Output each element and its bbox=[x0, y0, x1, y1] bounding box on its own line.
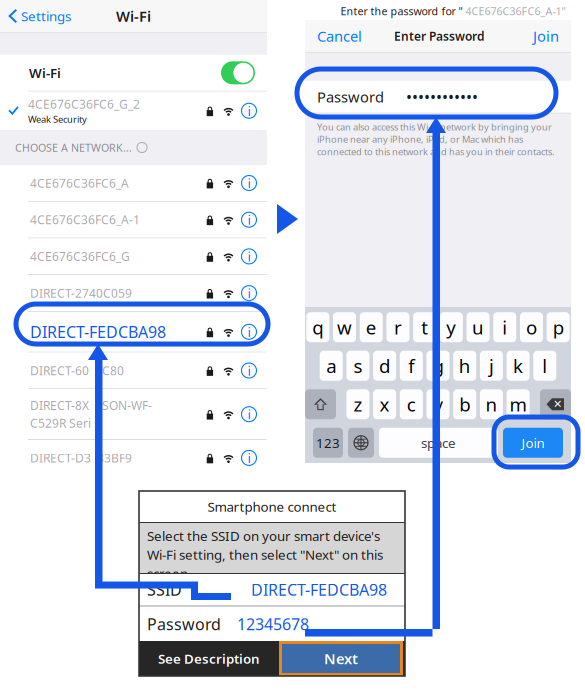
staticText: Weak Security bbox=[28, 113, 87, 125]
staticText: w bbox=[337, 315, 352, 340]
staticText: DIRECT-FEDCBA98 bbox=[251, 579, 387, 600]
staticText: DIRECT-8X PSON-WF- bbox=[30, 397, 152, 413]
staticText: b bbox=[459, 392, 470, 417]
staticText: space bbox=[421, 434, 456, 452]
staticText: i bbox=[247, 449, 250, 467]
button[interactable]: x bbox=[373, 389, 396, 419]
button[interactable]: b bbox=[453, 389, 476, 419]
button[interactable]: Delete bbox=[540, 389, 571, 419]
staticText: DIRECT-D3 33BF9 bbox=[30, 450, 132, 466]
staticText: Next bbox=[324, 649, 358, 668]
button[interactable]: DIRECT-2740C059 bbox=[0, 275, 267, 311]
button[interactable]: o bbox=[520, 312, 543, 342]
staticText: x bbox=[380, 392, 390, 417]
staticText: s bbox=[353, 353, 362, 378]
button[interactable]: u bbox=[467, 312, 490, 342]
staticText: j bbox=[489, 353, 494, 378]
staticText: Enter the password for " bbox=[340, 4, 462, 18]
button[interactable]: DIRECT-60 8C80 bbox=[0, 352, 267, 388]
staticText: i bbox=[247, 247, 250, 265]
staticText: o bbox=[526, 315, 537, 340]
staticText: p bbox=[553, 315, 564, 340]
button[interactable]: e bbox=[360, 312, 383, 342]
staticText: CHOOSE A NETWORK... bbox=[15, 140, 132, 155]
button[interactable]: Join bbox=[503, 428, 563, 458]
button[interactable]: Cancel bbox=[305, 20, 362, 52]
button[interactable]: d bbox=[373, 351, 396, 381]
button[interactable]: 4CE676C36FC6_G bbox=[0, 238, 267, 274]
button[interactable]: 4CE676C36FC6_A-1 bbox=[0, 202, 267, 238]
staticText: r bbox=[394, 315, 402, 340]
staticText: 4CE676C36FC6_A-1" bbox=[465, 4, 565, 18]
button[interactable]: h bbox=[453, 351, 476, 381]
button[interactable]: 123 bbox=[313, 428, 343, 458]
staticText: Wi-Fi bbox=[29, 64, 61, 82]
button[interactable]: p bbox=[547, 312, 570, 342]
button[interactable]: See Description bbox=[139, 641, 279, 676]
staticText: q bbox=[312, 315, 323, 340]
staticText: DIRECT-60 8C80 bbox=[30, 362, 124, 378]
staticText: i bbox=[247, 323, 250, 341]
button[interactable]: Next keyboard bbox=[348, 428, 374, 458]
staticText: i bbox=[247, 284, 250, 302]
button[interactable]: s bbox=[346, 351, 369, 381]
staticText: i bbox=[247, 102, 250, 120]
button[interactable]: DIRECT-FEDCBA98 bbox=[0, 312, 267, 352]
button[interactable]: c bbox=[400, 389, 423, 419]
button[interactable]: Settings bbox=[0, 0, 71, 32]
staticText: Password bbox=[147, 613, 221, 635]
button[interactable]: j bbox=[480, 351, 503, 381]
staticText: i bbox=[247, 211, 250, 228]
staticText: Wi-Fi bbox=[116, 6, 151, 26]
staticText: i bbox=[247, 405, 250, 423]
button[interactable]: q bbox=[306, 312, 329, 342]
button[interactable]: v bbox=[426, 389, 449, 419]
button[interactable]: g bbox=[426, 351, 449, 381]
staticText: Enter Password bbox=[394, 28, 485, 44]
staticText: You can also access this Wi-Fi network b… bbox=[317, 121, 555, 158]
staticText: Join bbox=[521, 434, 544, 452]
button[interactable]: 4CE676C36FC6_G_2 bbox=[0, 91, 267, 130]
staticText: k bbox=[513, 353, 523, 378]
staticText: i bbox=[502, 315, 507, 340]
staticText: × bbox=[553, 393, 561, 413]
button[interactable]: k bbox=[507, 351, 530, 381]
staticText: See Description bbox=[158, 650, 260, 667]
button[interactable]: Next bbox=[279, 641, 403, 676]
button[interactable]: i bbox=[493, 312, 516, 342]
button[interactable]: Wi-Fi on bbox=[221, 61, 255, 84]
staticText: Password bbox=[317, 87, 384, 107]
button[interactable]: w bbox=[333, 312, 356, 342]
button[interactable]: y bbox=[440, 312, 463, 342]
button[interactable]: 4CE676C36FC6_A bbox=[0, 165, 267, 201]
button[interactable]: Shift bbox=[305, 389, 336, 419]
staticText: i bbox=[247, 174, 250, 192]
staticText: 4CE676C36FC6_G_2 bbox=[28, 96, 140, 112]
button[interactable]: n bbox=[480, 389, 503, 419]
staticText: DIRECT-FEDCBA98 bbox=[30, 321, 166, 342]
staticText: u bbox=[472, 315, 484, 340]
button[interactable]: r bbox=[386, 312, 409, 342]
button[interactable]: f bbox=[400, 351, 423, 381]
staticText: screen. bbox=[147, 564, 192, 582]
staticText: v bbox=[433, 392, 442, 417]
staticText: Select the SSID on your smart device's bbox=[147, 527, 380, 545]
staticText: 4CE676C36FC6_A-1 bbox=[30, 212, 140, 228]
button[interactable]: m bbox=[507, 389, 530, 419]
staticText: h bbox=[459, 353, 471, 378]
staticText: m bbox=[510, 392, 527, 417]
button[interactable]: t bbox=[413, 312, 436, 342]
button[interactable]: l bbox=[533, 351, 556, 381]
button[interactable]: Join bbox=[533, 20, 571, 52]
staticText: 4CE676C36FC6_G bbox=[30, 248, 130, 264]
staticText: l bbox=[542, 353, 547, 378]
button[interactable]: z bbox=[346, 389, 369, 419]
button[interactable]: DIRECT-8X PSON-WF- bbox=[0, 389, 267, 439]
staticText: DIRECT-2740C059 bbox=[30, 285, 132, 301]
button[interactable]: a bbox=[320, 351, 343, 381]
button[interactable]: DIRECT-D3 33BF9 bbox=[0, 440, 267, 476]
staticText: c bbox=[407, 392, 416, 417]
button[interactable]: space bbox=[379, 428, 498, 458]
staticText: g bbox=[432, 353, 443, 378]
staticText: t bbox=[421, 315, 428, 340]
